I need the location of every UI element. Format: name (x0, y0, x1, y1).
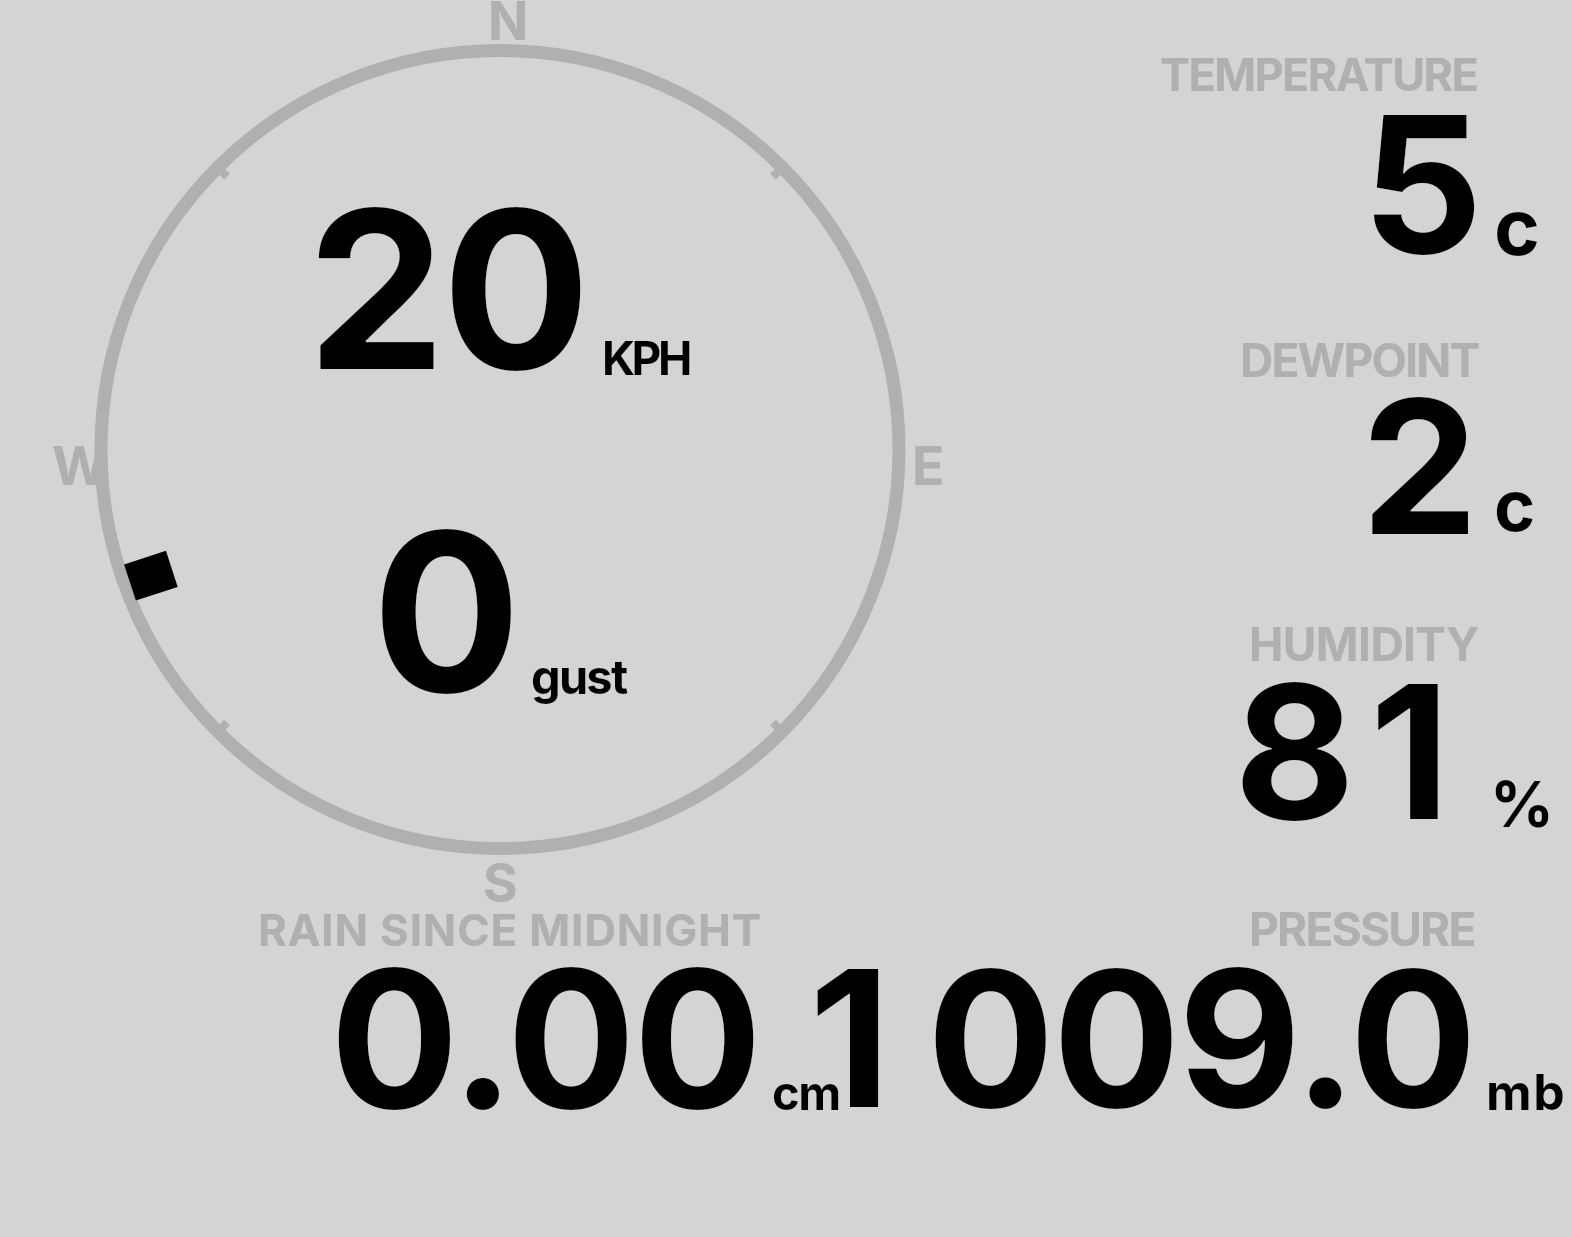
staticText: TEMPERATURE (1160, 47, 1478, 101)
staticText: c (1494, 463, 1536, 548)
staticText: 2 (1361, 354, 1479, 579)
staticText: RAIN SINCE MIDNIGHT (258, 903, 762, 956)
button[interactable]: Dewpoint (1130, 310, 1560, 560)
staticText: 81 (1234, 639, 1465, 864)
button[interactable]: Temperature (1130, 30, 1560, 280)
button[interactable]: Wind speed and direction (90, 40, 910, 860)
staticText: 20 (307, 156, 587, 422)
staticText: PRESSURE (1249, 901, 1475, 957)
staticText: c (1494, 179, 1540, 273)
staticText: W (52, 434, 107, 498)
staticText: HUMIDITY (1249, 616, 1479, 672)
button[interactable]: Rain since midnight (250, 895, 850, 1125)
staticText: 009.0 (927, 924, 1476, 1153)
staticText: S (483, 851, 518, 915)
staticText: KPH (602, 330, 689, 386)
staticText: cm (772, 1064, 840, 1121)
staticText: mb (1486, 1062, 1567, 1122)
other: Wind compass (0, 0, 1571, 1237)
staticText: DEWPOINT (1240, 332, 1479, 388)
button[interactable]: Humidity (1130, 590, 1570, 840)
staticText: % (1490, 766, 1554, 842)
staticText: 1 (809, 924, 891, 1153)
staticText: N (488, 0, 529, 53)
staticText: gust (531, 648, 627, 705)
button[interactable]: Pressure (860, 895, 1570, 1125)
staticText: 0.00 (330, 923, 760, 1154)
staticText: 0 (372, 478, 522, 745)
staticText: 5 (1362, 70, 1483, 299)
staticText: E (912, 434, 945, 498)
